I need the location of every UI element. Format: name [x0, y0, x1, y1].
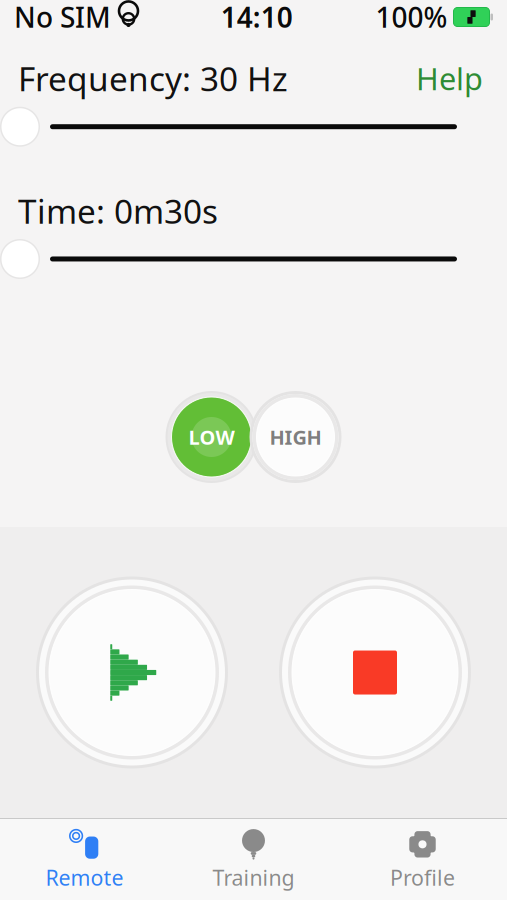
- button[interactable]: Profile: [338, 821, 507, 898]
- button[interactable]: Play: [36, 576, 228, 768]
- staticText: Frequency: 30 Hz: [18, 56, 288, 100]
- button[interactable]: Training: [169, 821, 338, 898]
- staticText: 100%: [375, 0, 447, 36]
- button[interactable]: Stop: [279, 576, 471, 768]
- staticText: HIGH: [269, 424, 321, 450]
- staticText: 14:10: [221, 0, 293, 36]
- staticText: Profile: [390, 863, 455, 892]
- button[interactable]: LOW: [165, 391, 257, 483]
- staticText: Training: [212, 863, 294, 892]
- staticText: Time: 0m30s: [18, 189, 218, 233]
- button[interactable]: Help: [410, 56, 489, 101]
- staticText: Help: [416, 58, 483, 99]
- staticText: LOW: [188, 424, 234, 450]
- staticText: Remote: [45, 863, 123, 892]
- button[interactable]: Remote: [0, 821, 169, 898]
- staticText: No SIM: [14, 0, 111, 36]
- button[interactable]: HIGH: [249, 391, 341, 483]
